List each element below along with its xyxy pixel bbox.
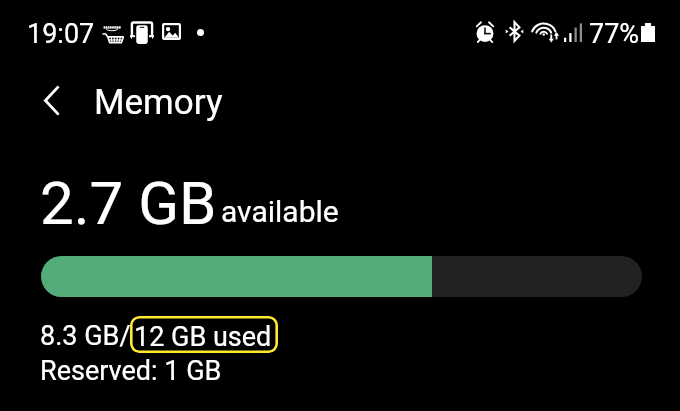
staticText: 8.3 GB/ [40, 320, 131, 352]
staticText: 19:07 [27, 18, 95, 50]
button[interactable]: 12 GB used [130, 316, 278, 353]
staticText: 2.7 GB [40, 168, 217, 238]
button[interactable]: Navigate up [29, 78, 74, 123]
staticText: 77% [589, 18, 640, 50]
staticText: 12 GB used [134, 321, 272, 353]
staticText: Reserved: 1 GB [40, 355, 222, 387]
staticText: available [221, 194, 339, 229]
staticText: Memory [94, 82, 223, 123]
